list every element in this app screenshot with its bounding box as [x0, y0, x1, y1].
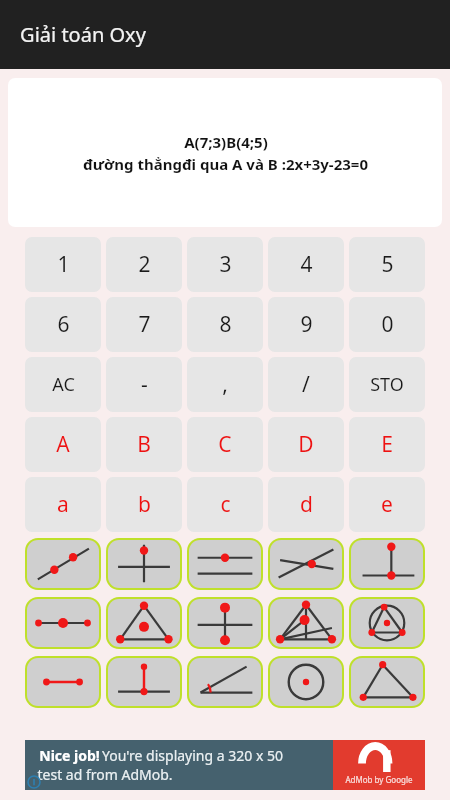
- staticText: STO: [370, 372, 404, 397]
- button[interactable]: Triangle centre: [108, 599, 180, 647]
- staticText: C: [218, 430, 232, 459]
- button[interactable]: STO: [349, 357, 425, 412]
- button[interactable]: A(7;3)B(4;5): [8, 78, 442, 227]
- button[interactable]: 9: [268, 297, 344, 352]
- button[interactable]: Circumscribed circle: [351, 599, 423, 647]
- button[interactable]: 4: [268, 237, 344, 292]
- button[interactable]: Parallel lines: [189, 540, 261, 588]
- button[interactable]: 0: [349, 297, 425, 352]
- button[interactable]: ,: [187, 357, 263, 412]
- button[interactable]: AC: [25, 357, 101, 412]
- button[interactable]: Perpendicular through point: [108, 540, 180, 588]
- staticText: AC: [52, 372, 75, 397]
- button[interactable]: Giải toán Oxy: [0, 0, 450, 69]
- staticText: D: [298, 430, 314, 459]
- button[interactable]: Triangle: [351, 658, 423, 706]
- button[interactable]: Perpendicular line: [108, 658, 180, 706]
- button[interactable]: Perpendicular foot: [351, 540, 423, 588]
- button[interactable]: D: [268, 417, 344, 472]
- button[interactable]: e: [349, 477, 425, 532]
- staticText: e: [381, 490, 393, 519]
- button[interactable]: a: [25, 477, 101, 532]
- staticText: a: [57, 490, 69, 519]
- staticText: 8: [219, 310, 232, 339]
- staticText: ,: [222, 370, 228, 399]
- button[interactable]: Circle with centre: [270, 658, 342, 706]
- button[interactable]: Nice job!: [25, 740, 425, 790]
- staticText: 3: [219, 250, 232, 279]
- button[interactable]: c: [187, 477, 263, 532]
- button[interactable]: 2: [106, 237, 182, 292]
- button[interactable]: 8: [187, 297, 263, 352]
- staticText: You're displaying a 320 x 50: [102, 746, 283, 765]
- staticText: -: [141, 370, 148, 399]
- button[interactable]: 6: [25, 297, 101, 352]
- staticText: c: [220, 490, 231, 519]
- button[interactable]: Collinear points: [27, 599, 99, 647]
- staticText: 5: [381, 250, 394, 279]
- staticText: A: [56, 430, 70, 459]
- staticText: E: [381, 430, 393, 459]
- button[interactable]: b: [106, 477, 182, 532]
- staticText: d: [300, 490, 313, 519]
- staticText: B: [137, 430, 151, 459]
- button[interactable]: Triangle medians: [270, 599, 342, 647]
- button[interactable]: 7: [106, 297, 182, 352]
- button[interactable]: E: [349, 417, 425, 472]
- staticText: 4: [300, 250, 313, 279]
- staticText: A(7;3)B(4;5): [184, 132, 268, 152]
- staticText: đường thẳngđi qua A và B :2x+3y-23=0: [83, 154, 368, 174]
- button[interactable]: B: [106, 417, 182, 472]
- staticText: 0: [381, 310, 394, 339]
- button[interactable]: 5: [349, 237, 425, 292]
- staticText: 1: [57, 250, 70, 279]
- button[interactable]: Line through two points: [27, 540, 99, 588]
- button[interactable]: Intersecting lines: [270, 540, 342, 588]
- button[interactable]: Vertical line points: [189, 599, 261, 647]
- staticText: 7: [138, 310, 151, 339]
- staticText: test ad from AdMob.: [37, 765, 173, 784]
- button[interactable]: Segment: [27, 658, 99, 706]
- staticText: b: [138, 490, 151, 519]
- button[interactable]: /: [268, 357, 344, 412]
- staticText: Nice job!: [37, 746, 102, 765]
- staticText: Giải toán Oxy: [20, 21, 146, 48]
- button[interactable]: A: [25, 417, 101, 472]
- button[interactable]: 1: [25, 237, 101, 292]
- staticText: AdMob by Google: [345, 774, 413, 785]
- button[interactable]: Angle: [189, 658, 261, 706]
- button[interactable]: -: [106, 357, 182, 412]
- other: Ad info: [27, 775, 41, 789]
- staticText: 9: [300, 310, 313, 339]
- button[interactable]: d: [268, 477, 344, 532]
- button[interactable]: 3: [187, 237, 263, 292]
- staticText: 6: [57, 310, 70, 339]
- button[interactable]: C: [187, 417, 263, 472]
- staticText: 2: [138, 250, 151, 279]
- staticText: /: [302, 370, 310, 399]
